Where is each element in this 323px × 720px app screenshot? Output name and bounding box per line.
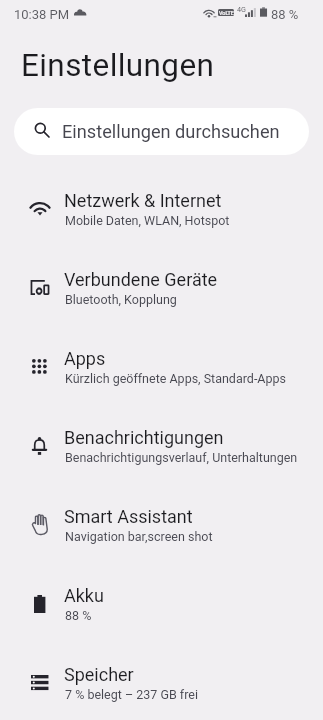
staticText: 88 % <box>271 7 299 22</box>
staticText: VoLTE <box>219 10 234 16</box>
button[interactable]: Akku <box>0 566 323 645</box>
staticText: Verbundene Geräte <box>64 269 218 290</box>
staticText: Smart Assistant <box>64 506 193 527</box>
staticText: Bluetooth, Kopplung <box>65 292 177 307</box>
button[interactable]: Benachrichtigungen <box>0 408 323 487</box>
staticText: Speicher <box>64 664 134 685</box>
staticText: 7 % belegt – 237 GB frei <box>65 687 198 702</box>
button[interactable]: Smart Assistant <box>0 487 323 566</box>
button[interactable]: Verbundene Geräte <box>0 250 323 329</box>
staticText: Benachrichtigungsverlauf, Unterhaltungen <box>65 450 298 465</box>
staticText: Apps <box>64 348 106 369</box>
staticText: Akku <box>64 585 104 606</box>
staticText: 10:38 PM <box>14 7 70 22</box>
staticText: Benachrichtigungen <box>64 427 224 448</box>
staticText: 88 % <box>65 608 92 623</box>
other: Suchen <box>34 122 52 140</box>
staticText: Mobile Daten, WLAN, Hotspot <box>65 213 230 228</box>
staticText: Netzwerk & Internet <box>64 190 222 211</box>
button[interactable]: Apps <box>0 329 323 408</box>
button[interactable]: Speicher <box>0 645 323 720</box>
staticText: 4G <box>237 5 246 13</box>
staticText: Kürzlich geöffnete Apps, Standard-Apps <box>65 371 286 386</box>
staticText: Einstellungen <box>21 47 215 84</box>
staticText: Einstellungen durchsuchen <box>62 121 280 142</box>
staticText: Navigation bar,screen shot <box>65 529 213 544</box>
button[interactable]: Suchen <box>14 108 309 155</box>
button[interactable]: Netzwerk & Internet <box>0 171 323 250</box>
